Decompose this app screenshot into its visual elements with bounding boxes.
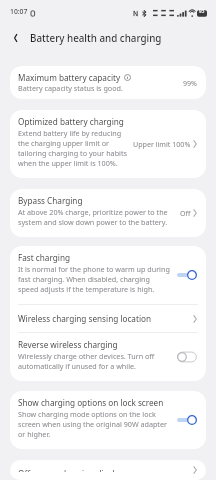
button[interactable]: Reverse wireless charging: [10, 333, 206, 381]
button[interactable]: Show charging options on lock screen: [10, 391, 206, 449]
staticText: Wirelessly charge other devices. Turn of…: [18, 351, 168, 371]
staticText: 93: [199, 8, 205, 14]
button[interactable]: On: [177, 269, 197, 281]
button[interactable]: Back: [7, 29, 25, 47]
button[interactable]: Off: [177, 351, 197, 363]
staticText: Fast charging: [18, 252, 70, 263]
staticText: Optimized battery charging: [18, 116, 124, 127]
staticText: Reverse wireless charging: [18, 339, 118, 350]
staticText: Show charging mode options on the lock s…: [18, 409, 173, 439]
staticText: Off: [180, 208, 191, 218]
staticText: Bypass Charging: [18, 195, 83, 206]
staticText: 99%: [183, 78, 198, 88]
button[interactable]: Off-screen charging display: [10, 460, 206, 480]
staticText: Show charging options on lock screen: [18, 397, 164, 408]
staticText: Extend battery life by reducing the char…: [18, 128, 128, 168]
staticText: 10:07: [10, 7, 28, 16]
staticText: Battery capacity status is good.: [18, 83, 123, 93]
button[interactable]: Bypass Charging: [10, 189, 206, 237]
button[interactable]: On: [177, 414, 197, 426]
button[interactable]: Wireless charging sensing location: [10, 305, 206, 332]
button[interactable]: Maximum battery capacity: [10, 66, 206, 99]
button[interactable]: Fast charging: [10, 246, 206, 304]
staticText: Battery health and charging: [30, 32, 162, 45]
staticText: Upper limit 100%: [133, 139, 191, 149]
staticText: Maximum battery capacity: [18, 72, 121, 83]
button[interactable]: Optimized battery charging: [10, 110, 206, 178]
staticText: Off-screen charging display: [18, 468, 193, 472]
staticText: It is normal for the phone to warm up du…: [18, 264, 170, 294]
staticText: At above 20% charge, prioritize power to…: [18, 207, 168, 227]
staticText: Wireless charging sensing location: [18, 313, 193, 324]
